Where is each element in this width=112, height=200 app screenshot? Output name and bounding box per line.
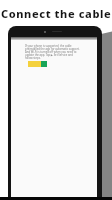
- button[interactable]: [28, 61, 42, 67]
- staticText: If your phone is supported, the cable pr…: [25, 44, 80, 60]
- button[interactable]: Connect the cable: [1, 6, 112, 21]
- staticText: Connect the cable: [1, 6, 112, 21]
